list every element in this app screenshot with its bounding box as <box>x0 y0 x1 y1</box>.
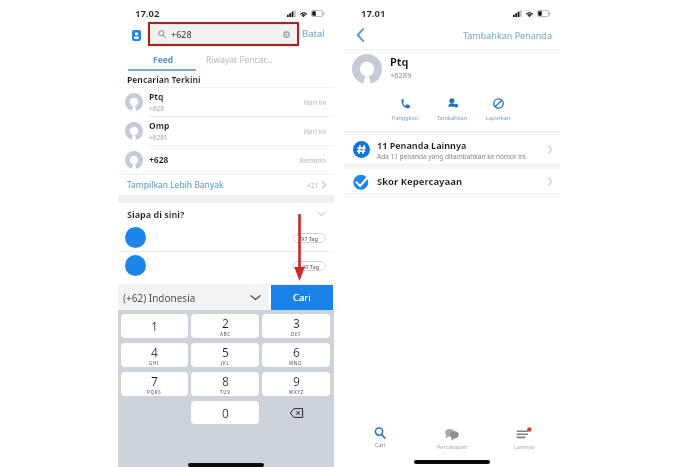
button[interactable]: Lainnya <box>488 417 560 451</box>
staticText: 9 <box>293 373 300 389</box>
staticText: Omp <box>149 120 170 132</box>
staticText: Tambahkan <box>429 114 475 121</box>
button[interactable]: Percakapan <box>416 417 488 451</box>
staticText: Lainnya <box>514 443 535 450</box>
staticText: 97 Tag <box>301 235 318 242</box>
staticText: 3 <box>293 315 300 331</box>
staticText: WXYZ <box>289 389 304 395</box>
button[interactable]: Tampilkan Lebih Banyak <box>118 175 334 195</box>
staticText: Cari <box>375 441 386 448</box>
button[interactable]: Cari <box>344 417 416 451</box>
button[interactable]: Back <box>348 23 372 47</box>
staticText: Ptq <box>149 91 164 103</box>
button[interactable]: Contacts <box>129 28 143 42</box>
button[interactable]: 3 <box>262 314 330 338</box>
staticText: 6 <box>293 344 300 360</box>
staticText: 1 <box>151 318 158 334</box>
button[interactable]: (+62) Indonesia <box>118 285 268 310</box>
staticText: (+62) Indonesia <box>123 291 196 305</box>
staticText: +628 <box>149 104 164 113</box>
staticText: MNO <box>289 360 303 366</box>
staticText: Percakapan <box>437 443 468 450</box>
button[interactable]: Backspace <box>262 401 330 424</box>
button[interactable]: Batal <box>302 27 325 40</box>
staticText: Ptq <box>390 54 409 69</box>
staticText: 17.01 <box>361 7 386 20</box>
button[interactable]: 9 <box>262 372 330 396</box>
staticText: Pencarian Terkini <box>127 74 201 86</box>
button[interactable]: 1 <box>121 314 188 338</box>
button[interactable]: Omp <box>118 117 334 145</box>
staticText: ABC <box>220 331 231 337</box>
button[interactable]: Laporkan <box>475 98 521 121</box>
staticText: Feed <box>153 54 174 66</box>
staticText: DEF <box>291 331 302 337</box>
staticText: +6281 <box>149 133 168 142</box>
button[interactable]: 4 <box>121 343 188 367</box>
staticText: +628 <box>149 154 169 166</box>
staticText: GHI <box>149 360 160 366</box>
staticText: 11 Penanda Lainnya <box>377 139 467 151</box>
staticText: Ada 11 penanda yang ditambahkan ke nomor… <box>377 152 528 161</box>
button[interactable]: 8 <box>191 372 259 396</box>
button[interactable]: Cari <box>271 285 333 310</box>
staticText: 4 <box>151 344 158 360</box>
button[interactable]: 6 <box>262 343 330 367</box>
staticText: 2 <box>222 315 229 331</box>
staticText: +6289 <box>390 70 412 80</box>
button[interactable]: Panggilan <box>382 98 428 121</box>
button[interactable]: Ptq <box>118 88 334 116</box>
staticText: 0 <box>222 405 229 421</box>
staticText: +628 <box>171 28 192 40</box>
staticText: Laporkan <box>475 114 521 121</box>
staticText: JKL <box>221 360 230 366</box>
staticText: Panggilan <box>382 114 428 121</box>
button[interactable]: +628 <box>118 146 334 174</box>
staticText: Hari ini <box>304 98 326 107</box>
staticText: Siapa di sini? <box>127 208 185 220</box>
button[interactable]: Riwayat Pencar… <box>204 50 274 73</box>
staticText: Riwayat Pencar… <box>206 54 273 66</box>
staticText: 100 Tag <box>299 263 320 270</box>
button[interactable]: +628 <box>151 24 296 44</box>
staticText: 8 <box>222 373 229 389</box>
staticText: Hari ini <box>304 127 326 136</box>
staticText: 5 <box>222 344 229 360</box>
staticText: Batal <box>302 27 325 40</box>
staticText: Cari <box>293 291 311 304</box>
staticText: Tampilkan Lebih Banyak <box>127 179 224 191</box>
staticText: 7 <box>151 373 158 389</box>
button[interactable]: Tambahkan <box>429 98 475 121</box>
button[interactable]: Skor Kepercayaan <box>344 169 560 193</box>
staticText: 17.02 <box>135 7 160 20</box>
staticText: Skor Kepercayaan <box>377 175 463 188</box>
staticText: TUV <box>220 389 231 395</box>
staticText: Tambahkan Penanda <box>463 29 552 41</box>
button[interactable]: 2 <box>191 314 259 338</box>
staticText: Kemarin <box>300 156 326 165</box>
button[interactable]: 7 <box>121 372 188 396</box>
button[interactable]: 11 Penanda Lainnya <box>344 135 560 164</box>
button[interactable]: 97 Tag <box>118 224 334 251</box>
staticText: +21 <box>307 181 319 190</box>
staticText: PQRS <box>147 389 162 395</box>
button[interactable]: Feed <box>128 50 198 73</box>
button[interactable]: 100 Tag <box>118 252 334 279</box>
button[interactable]: 0 <box>191 401 259 424</box>
button[interactable]: 5 <box>191 343 259 367</box>
